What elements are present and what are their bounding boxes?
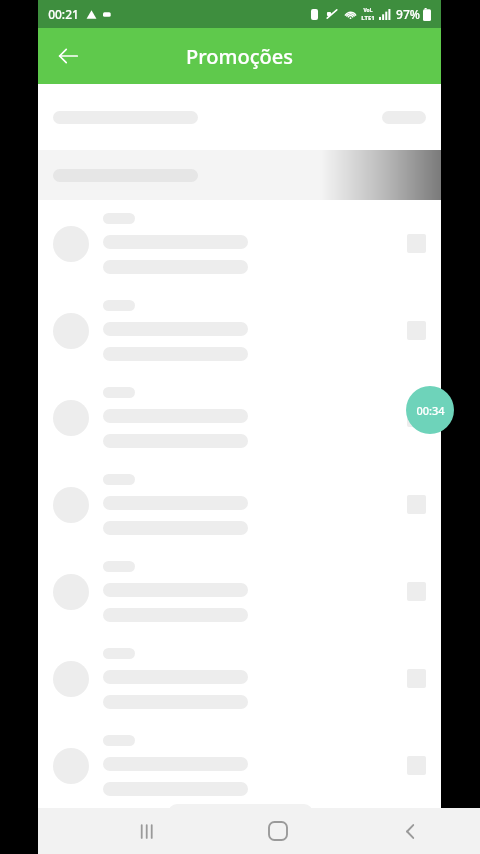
button[interactable]: Home: [255, 808, 301, 854]
button[interactable]: [38, 200, 441, 287]
button[interactable]: [38, 287, 441, 374]
staticText: Promoções: [186, 43, 293, 70]
staticText: 00:21: [48, 6, 79, 22]
button[interactable]: [38, 635, 441, 722]
staticText: 00:34: [416, 403, 445, 418]
button[interactable]: Recent apps: [124, 808, 170, 854]
button[interactable]: [38, 461, 441, 548]
staticText: VoL: [363, 7, 373, 14]
staticText: LTE1: [361, 14, 375, 22]
button[interactable]: [38, 722, 441, 809]
button[interactable]: Back: [46, 34, 90, 78]
button[interactable]: Timer 00:34: [406, 386, 454, 434]
button[interactable]: [38, 374, 441, 461]
button[interactable]: [38, 548, 441, 635]
button[interactable]: Back: [387, 808, 433, 854]
staticText: 97%: [396, 6, 420, 22]
